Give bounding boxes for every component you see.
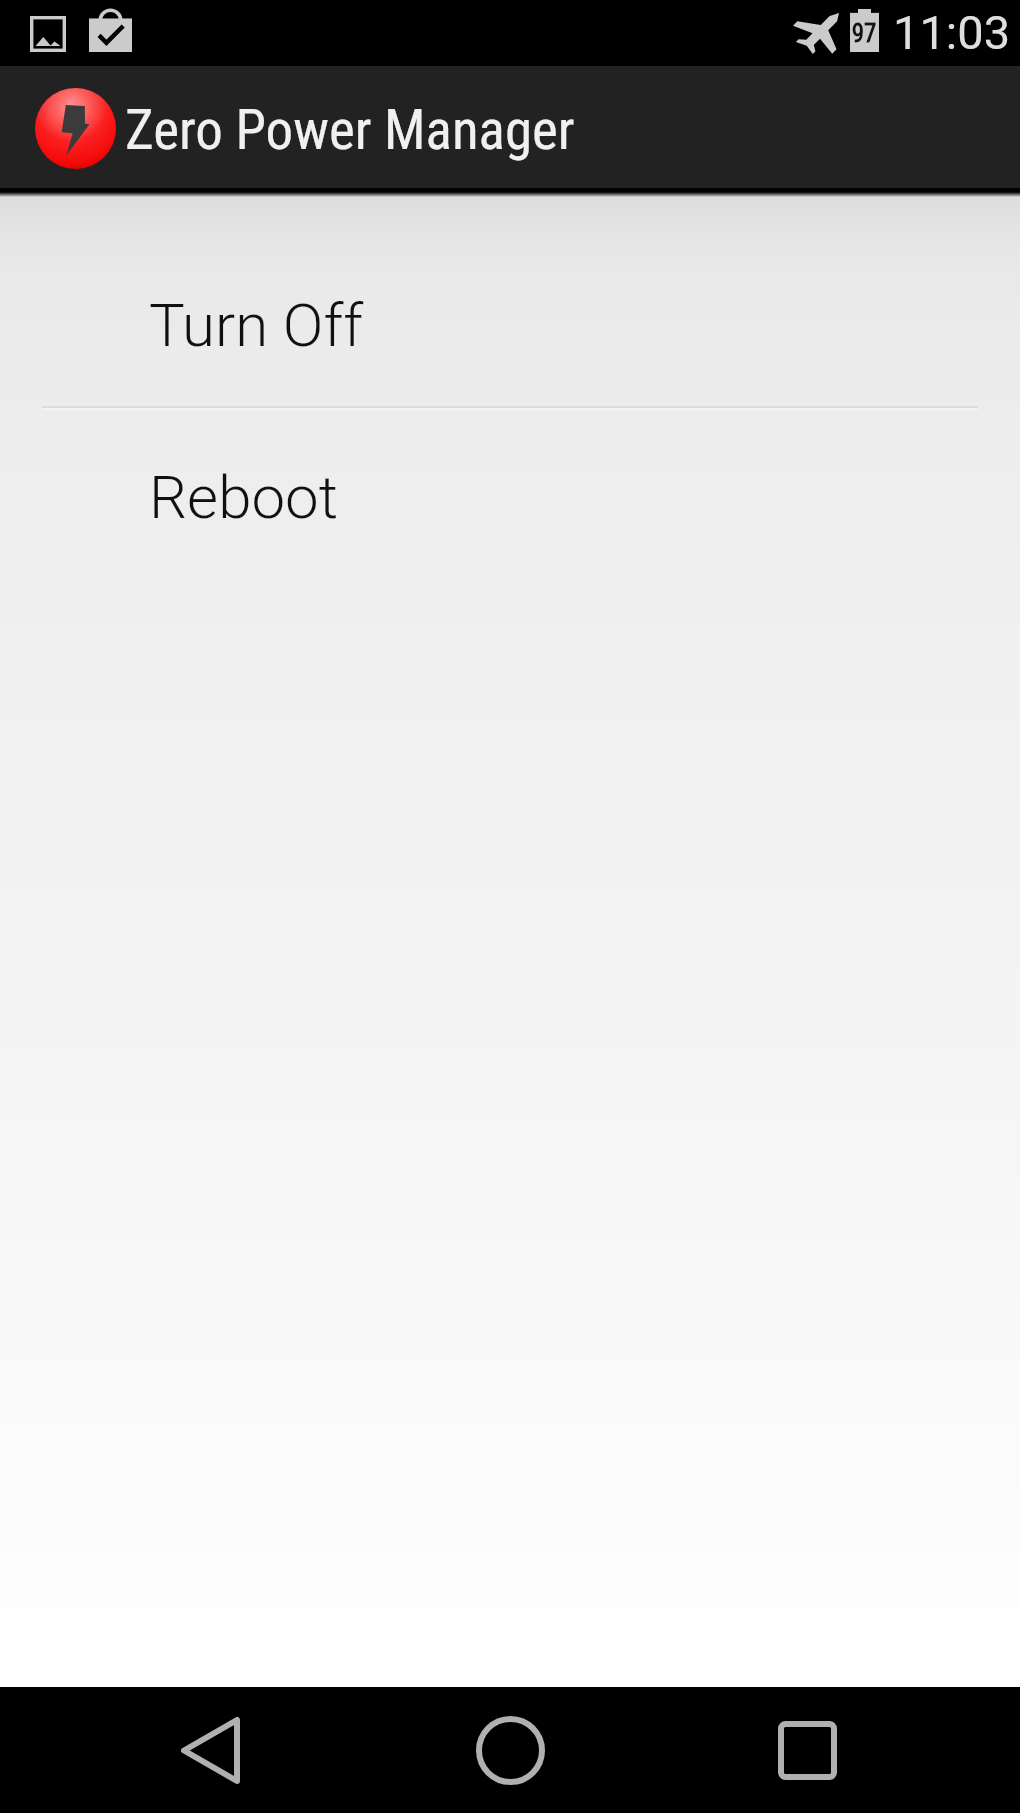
button[interactable]: Turn Off	[0, 243, 1020, 406]
staticText: 11:03	[893, 5, 1011, 60]
staticText: Turn Off	[149, 290, 364, 360]
staticText: 97	[850, 19, 878, 48]
staticText: Zero Power Manager	[125, 98, 575, 162]
staticText: Reboot	[149, 462, 338, 532]
button[interactable]: Recent apps	[744, 1687, 870, 1813]
button[interactable]: Reboot	[0, 410, 1020, 568]
button[interactable]: Home	[447, 1687, 573, 1813]
button[interactable]: Back	[147, 1687, 273, 1813]
